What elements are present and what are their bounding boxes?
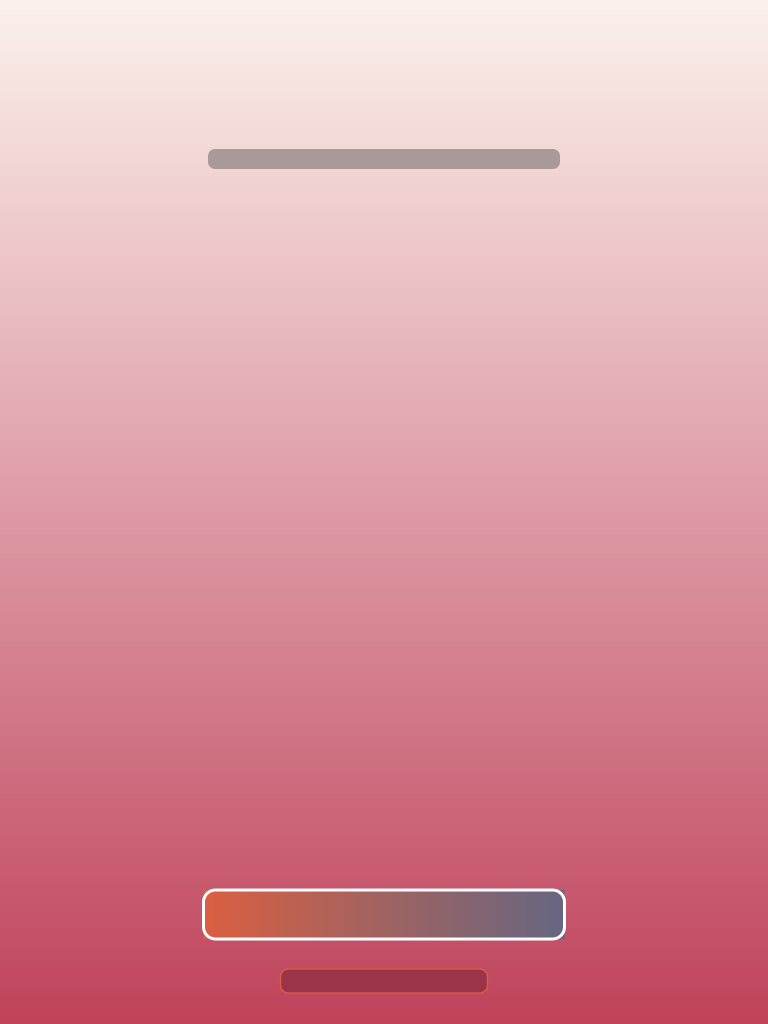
button[interactable]: Restore purchase xyxy=(280,969,487,993)
button[interactable]: Continue xyxy=(203,890,564,939)
